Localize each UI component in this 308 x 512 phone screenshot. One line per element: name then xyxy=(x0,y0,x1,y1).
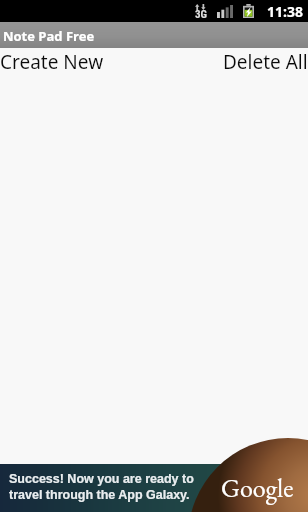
staticText: Success! Now you are ready to xyxy=(9,472,194,486)
staticText: Google xyxy=(221,471,294,505)
staticText: Create New xyxy=(0,49,104,75)
button[interactable]: Success! Now you are ready to xyxy=(0,464,308,512)
staticText: Delete All xyxy=(223,49,308,75)
button[interactable]: Create New xyxy=(0,48,154,76)
button[interactable]: Delete All xyxy=(154,48,308,76)
staticText: 11:38 xyxy=(267,2,303,21)
staticText: Note Pad Free xyxy=(3,27,95,45)
staticText: 3G xyxy=(195,8,208,21)
staticText: travel through the App Galaxy. xyxy=(9,488,190,502)
